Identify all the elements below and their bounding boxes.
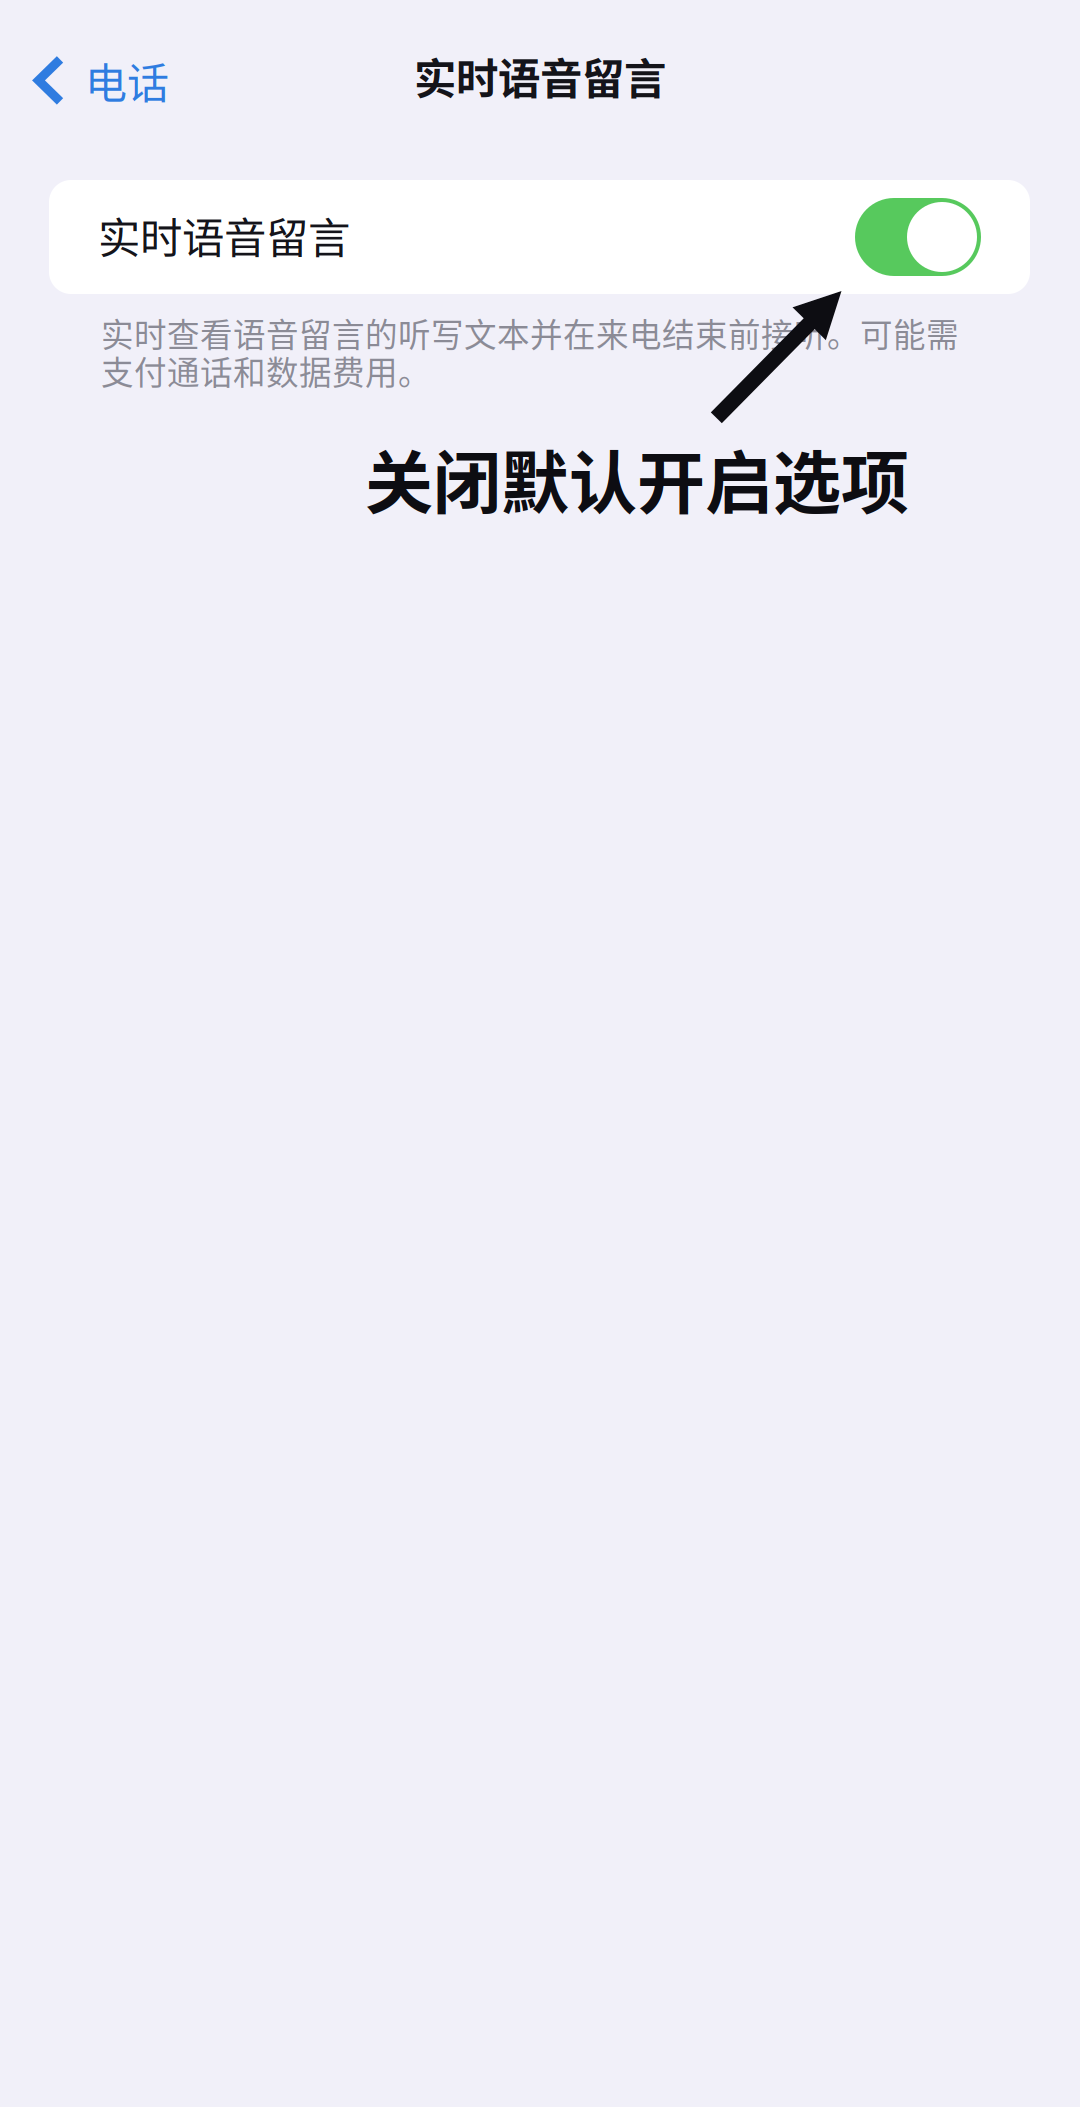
staticText: 实时语音留言 — [414, 45, 666, 106]
staticText: 实时查看语音留言的听写文本并在来电结束前接听。可能需支付通话和数据费用。 — [101, 314, 959, 389]
button[interactable]: 电话 — [0, 32, 198, 129]
staticText: 实时语音留言 — [98, 204, 350, 266]
staticText: 关闭默认开启选项 — [365, 429, 909, 527]
staticText: 电话 — [85, 50, 169, 111]
button[interactable]: 实时语音留言 — [49, 180, 1030, 294]
